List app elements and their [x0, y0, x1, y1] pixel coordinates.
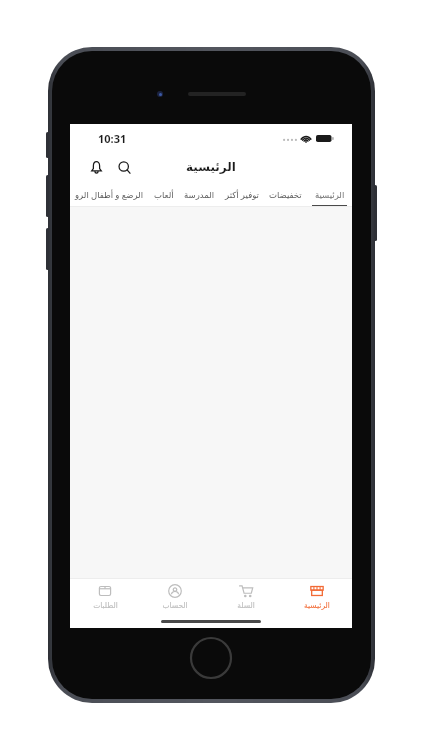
staticText: توفير أكثر [225, 189, 259, 201]
button[interactable]: Search [112, 155, 136, 179]
staticText: الطلبات [93, 601, 118, 610]
button[interactable]: الرضع و أطفال الرو [70, 182, 149, 207]
staticText: الرضع و أطفال الرو [75, 189, 144, 201]
button[interactable]: الرئيسية [281, 578, 352, 616]
staticText: تخفيضات [269, 190, 302, 200]
staticText: المدرسة [184, 190, 215, 200]
staticText: الحساب [162, 601, 188, 610]
staticText: الرئيسية [304, 601, 330, 610]
button[interactable]: توفير أكثر [220, 182, 264, 207]
staticText: الرئيسية [315, 190, 345, 200]
button[interactable]: المدرسة [179, 182, 220, 207]
staticText: الرئيسية [186, 160, 236, 174]
staticText: 10:31 [98, 131, 127, 146]
staticText: ألعاب [154, 190, 174, 200]
button[interactable]: Notifications [84, 155, 108, 179]
button[interactable]: الحساب [140, 578, 210, 616]
button[interactable]: الرئيسية [307, 182, 352, 207]
button[interactable]: تخفيضات [264, 182, 307, 207]
staticText: السلة [237, 601, 255, 610]
button[interactable]: السلة [210, 578, 281, 616]
button[interactable]: الطلبات [70, 578, 140, 616]
button[interactable]: ألعاب [149, 182, 179, 207]
